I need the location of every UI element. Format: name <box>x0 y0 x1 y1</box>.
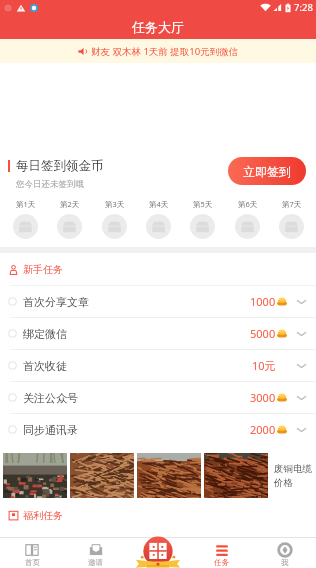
staticText: 7:28 <box>294 1 313 14</box>
staticText: 5000 <box>250 326 276 341</box>
staticText: 2000 <box>250 422 276 437</box>
button[interactable]: 财友 双木林 1天前 提取10元到微信 <box>0 39 316 63</box>
staticText: 财友 双木林 1天前 提取10元到微信 <box>91 45 239 58</box>
button[interactable]: 任务 <box>190 538 253 568</box>
staticText: 第2天 <box>60 199 80 209</box>
staticText: 第7天 <box>282 199 302 209</box>
staticText: 首次收徒 <box>23 359 67 373</box>
button[interactable]: 立即签到 <box>228 157 306 185</box>
staticText: 同步通讯录 <box>23 423 78 437</box>
staticText: 首次分享文章 <box>23 295 89 309</box>
staticText: 第3天 <box>105 199 125 209</box>
button[interactable]: 第3天 <box>102 199 127 239</box>
button[interactable]: 第2天 <box>57 199 82 239</box>
button[interactable]: 首次分享文章 <box>0 286 316 317</box>
staticText: 第4天 <box>149 199 169 209</box>
staticText: 福利任务 <box>23 509 63 522</box>
button[interactable]: 邀请 <box>64 538 127 568</box>
button[interactable]: 第4天 <box>146 199 171 239</box>
button[interactable]: 绑定微信 <box>0 318 316 349</box>
staticText: 任务大厅 <box>132 19 184 35</box>
staticText: 新手任务 <box>23 263 63 276</box>
button[interactable]: 首页 <box>0 538 64 568</box>
staticText: 您今日还未签到哦 <box>16 179 84 190</box>
button[interactable]: 废铜电缆价格 <box>3 453 316 498</box>
button[interactable]: 第1天 <box>13 199 38 239</box>
staticText: 10元 <box>252 358 276 373</box>
staticText: 我 <box>281 558 289 567</box>
staticText: 第5天 <box>193 199 213 209</box>
button[interactable]: 首次收徒 <box>0 350 316 381</box>
button[interactable]: 关注公众号 <box>0 382 316 413</box>
staticText: 首页 <box>25 558 40 567</box>
staticText: 第1天 <box>16 199 36 209</box>
staticText: 3000 <box>250 390 276 405</box>
button[interactable]: Post task <box>134 537 182 568</box>
staticText: 邀请 <box>88 558 103 567</box>
staticText: 废铜电缆价格 <box>274 463 315 489</box>
button[interactable]: 第7天 <box>279 199 304 239</box>
staticText: 第6天 <box>238 199 258 209</box>
staticText: 1000 <box>250 294 276 309</box>
staticText: 立即签到 <box>243 164 291 179</box>
staticText: 任务 <box>214 558 229 567</box>
button[interactable]: 我 <box>253 538 316 568</box>
staticText: 关注公众号 <box>23 391 78 405</box>
button[interactable]: 同步通讯录 <box>0 414 316 445</box>
button[interactable]: 第6天 <box>235 199 260 239</box>
staticText: 绑定微信 <box>23 327 67 341</box>
staticText: 每日签到领金币 <box>16 158 104 174</box>
button[interactable]: 第5天 <box>190 199 215 239</box>
